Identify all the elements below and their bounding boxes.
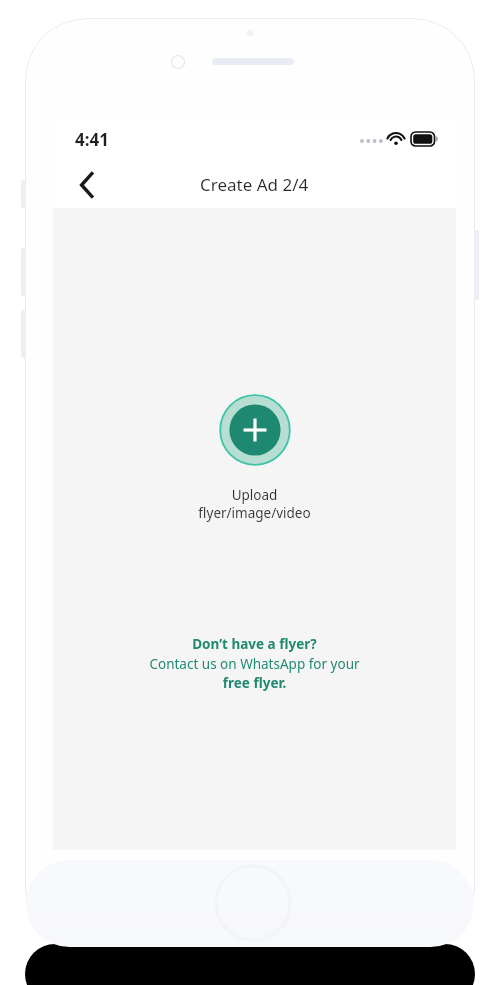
staticText: Don’t have a flyer? Contact us on WhatsA… — [149, 635, 360, 692]
button[interactable]: Don’t have a flyer? Contact us on WhatsA… — [149, 635, 360, 692]
button[interactable]: Back — [67, 165, 107, 205]
other: Upload flyer, image or video — [219, 394, 291, 466]
staticText: Upload flyer/image/video — [198, 486, 311, 522]
button[interactable]: Upload flyer, image or video — [198, 394, 311, 522]
staticText: Create Ad 2/4 — [200, 173, 309, 196]
staticText: 4:41 — [75, 128, 109, 151]
